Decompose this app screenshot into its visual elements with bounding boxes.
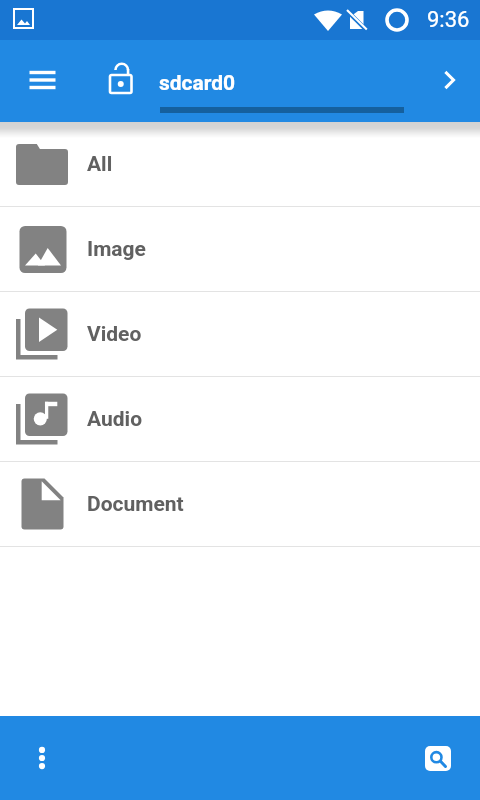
button[interactable]: Audio — [0, 377, 480, 461]
staticText: Document — [87, 492, 184, 517]
staticText: Video — [87, 322, 142, 347]
button[interactable]: All — [0, 122, 480, 206]
button[interactable]: More options — [18, 734, 66, 782]
staticText: Audio — [87, 407, 142, 432]
staticText: All — [87, 152, 113, 177]
button[interactable]: Document — [0, 462, 480, 546]
button[interactable]: Video — [0, 292, 480, 376]
staticText: sdcard0 — [159, 71, 236, 96]
staticText: 9:36 — [427, 7, 470, 33]
button[interactable]: Unlocked — [96, 56, 144, 104]
button[interactable]: Image — [0, 207, 480, 291]
button[interactable]: Next — [426, 56, 474, 104]
button[interactable]: Menu — [18, 56, 66, 104]
button[interactable]: Search — [425, 746, 451, 771]
staticText: Image — [87, 237, 146, 262]
